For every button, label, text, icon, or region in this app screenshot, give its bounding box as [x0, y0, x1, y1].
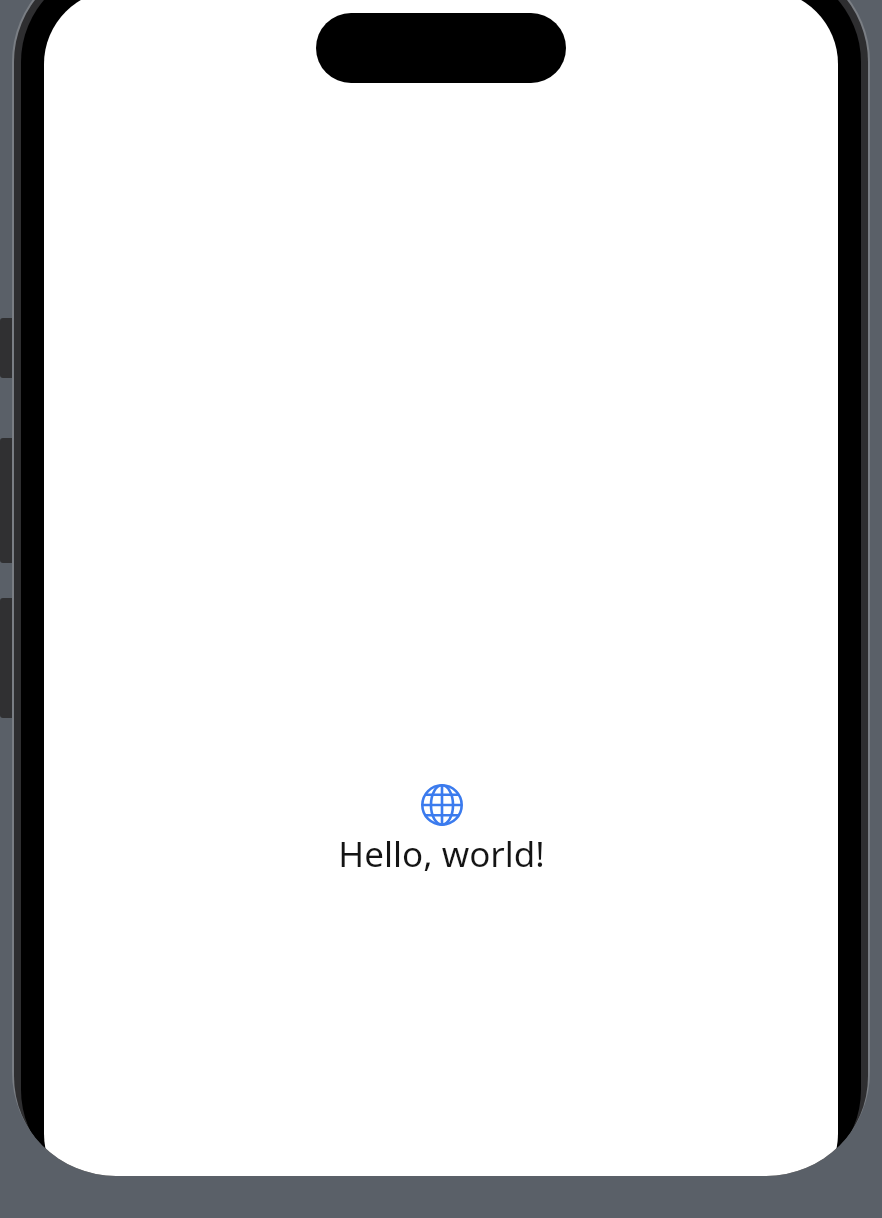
button[interactable]: Action button: [0, 318, 20, 378]
button[interactable]: Volume up: [0, 438, 20, 563]
staticText: Hello, world!: [338, 830, 545, 878]
button[interactable]: Power: [854, 527, 868, 713]
button[interactable]: Volume down: [0, 598, 20, 718]
other: Globe: [421, 784, 463, 826]
button[interactable]: Globe: [338, 784, 545, 878]
